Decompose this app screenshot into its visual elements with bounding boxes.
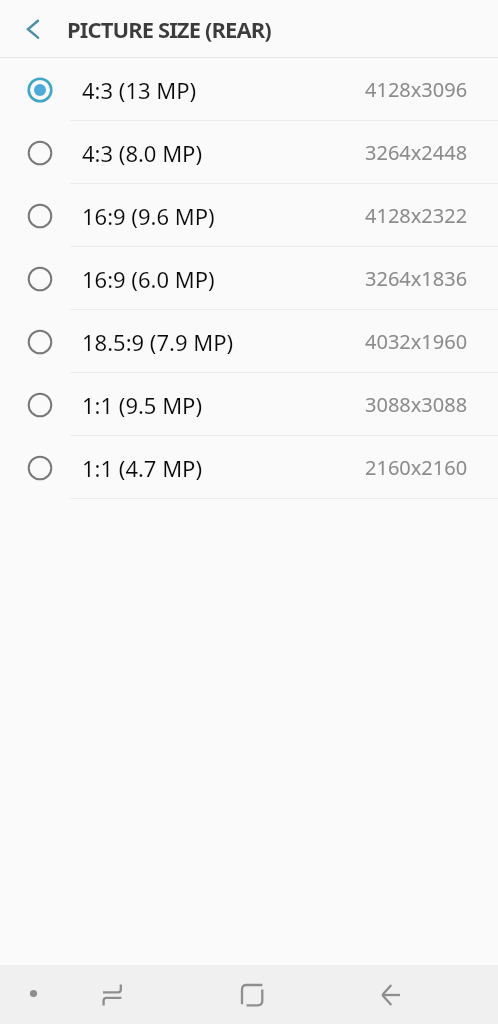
button[interactable]: 4:3 (8.0 MP) <box>0 121 498 184</box>
staticText: 3264x2448 <box>365 139 468 166</box>
staticText: 4:3 (13 MP) <box>82 75 197 105</box>
button[interactable]: 18.5:9 (7.9 MP) <box>0 310 498 373</box>
staticText: 18.5:9 (7.9 MP) <box>82 327 234 357</box>
button[interactable]: 4:3 (13 MP) <box>0 58 498 121</box>
staticText: PICTURE SIZE (REAR) <box>67 14 271 44</box>
staticText: 3088x3088 <box>365 391 468 418</box>
staticText: 16:9 (9.6 MP) <box>82 201 215 231</box>
button[interactable] <box>13 973 54 1014</box>
button[interactable]: 16:9 (9.6 MP) <box>0 184 498 247</box>
staticText: 4128x3096 <box>365 76 468 103</box>
staticText: 1:1 (9.5 MP) <box>82 390 203 420</box>
button[interactable] <box>228 971 276 1019</box>
staticText: 2160x2160 <box>365 454 468 481</box>
staticText: 4128x2322 <box>365 202 468 229</box>
staticText: 16:9 (6.0 MP) <box>82 264 215 294</box>
staticText: 4032x1960 <box>365 328 468 355</box>
button[interactable] <box>88 971 136 1019</box>
button[interactable]: 1:1 (9.5 MP) <box>0 373 498 436</box>
staticText: 1:1 (4.7 MP) <box>82 453 203 483</box>
button[interactable] <box>13 9 53 49</box>
button[interactable]: 1:1 (4.7 MP) <box>0 436 498 499</box>
staticText: 3264x1836 <box>365 265 468 292</box>
staticText: 4:3 (8.0 MP) <box>82 138 203 168</box>
button[interactable] <box>367 971 415 1019</box>
button[interactable]: 16:9 (6.0 MP) <box>0 247 498 310</box>
